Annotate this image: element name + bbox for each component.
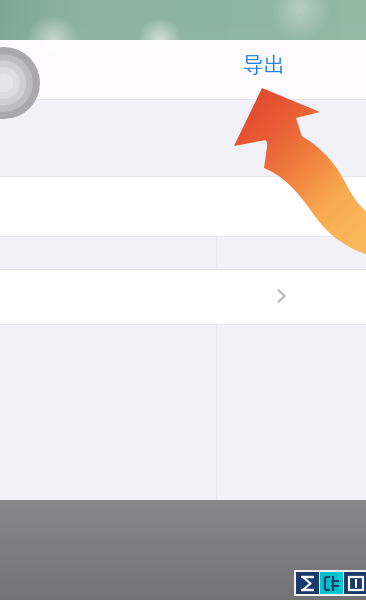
button[interactable]: Avatar — [0, 47, 40, 119]
button[interactable]: More — [268, 283, 294, 309]
staticText: 导出 — [232, 52, 296, 86]
button[interactable]: 导出 — [232, 52, 296, 86]
